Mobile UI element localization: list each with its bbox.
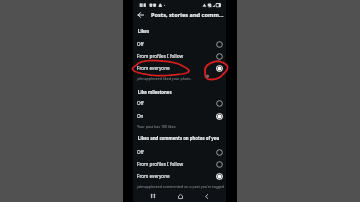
- button[interactable]: On: [133, 110, 226, 122]
- button[interactable]: Off: [133, 38, 226, 50]
- staticText: johnappleseed liked your photo.: [137, 76, 192, 81]
- staticText: Your post has 100 likes.: [137, 124, 177, 129]
- button[interactable]: Back: [135, 9, 147, 21]
- button[interactable]: Back: [195, 190, 217, 202]
- button[interactable]: From everyone: [133, 170, 226, 182]
- staticText: From profiles I follow: [137, 161, 184, 167]
- staticText: Posts, stories and comm…: [151, 11, 224, 19]
- button[interactable]: From everyone: [133, 62, 226, 74]
- button[interactable]: Home: [169, 190, 191, 202]
- staticText: Off: [137, 100, 144, 106]
- staticText: Likes and comments on photos of you: [138, 135, 220, 141]
- button[interactable]: Off: [133, 97, 226, 109]
- button[interactable]: Off: [133, 146, 226, 158]
- staticText: From everyone: [137, 173, 170, 179]
- staticText: Like milestones: [138, 89, 172, 95]
- button[interactable]: From profiles I follow: [133, 50, 226, 62]
- staticText: From everyone: [137, 65, 170, 71]
- staticText: johnappleseed commented on a post you're…: [137, 184, 225, 189]
- staticText: Likes: [138, 28, 150, 34]
- button[interactable]: From profiles I follow: [133, 158, 226, 170]
- staticText: On: [137, 113, 144, 119]
- staticText: Off: [137, 149, 144, 155]
- staticText: From profiles I follow: [137, 53, 184, 59]
- button[interactable]: Recent apps: [142, 190, 164, 202]
- staticText: Off: [137, 41, 144, 47]
